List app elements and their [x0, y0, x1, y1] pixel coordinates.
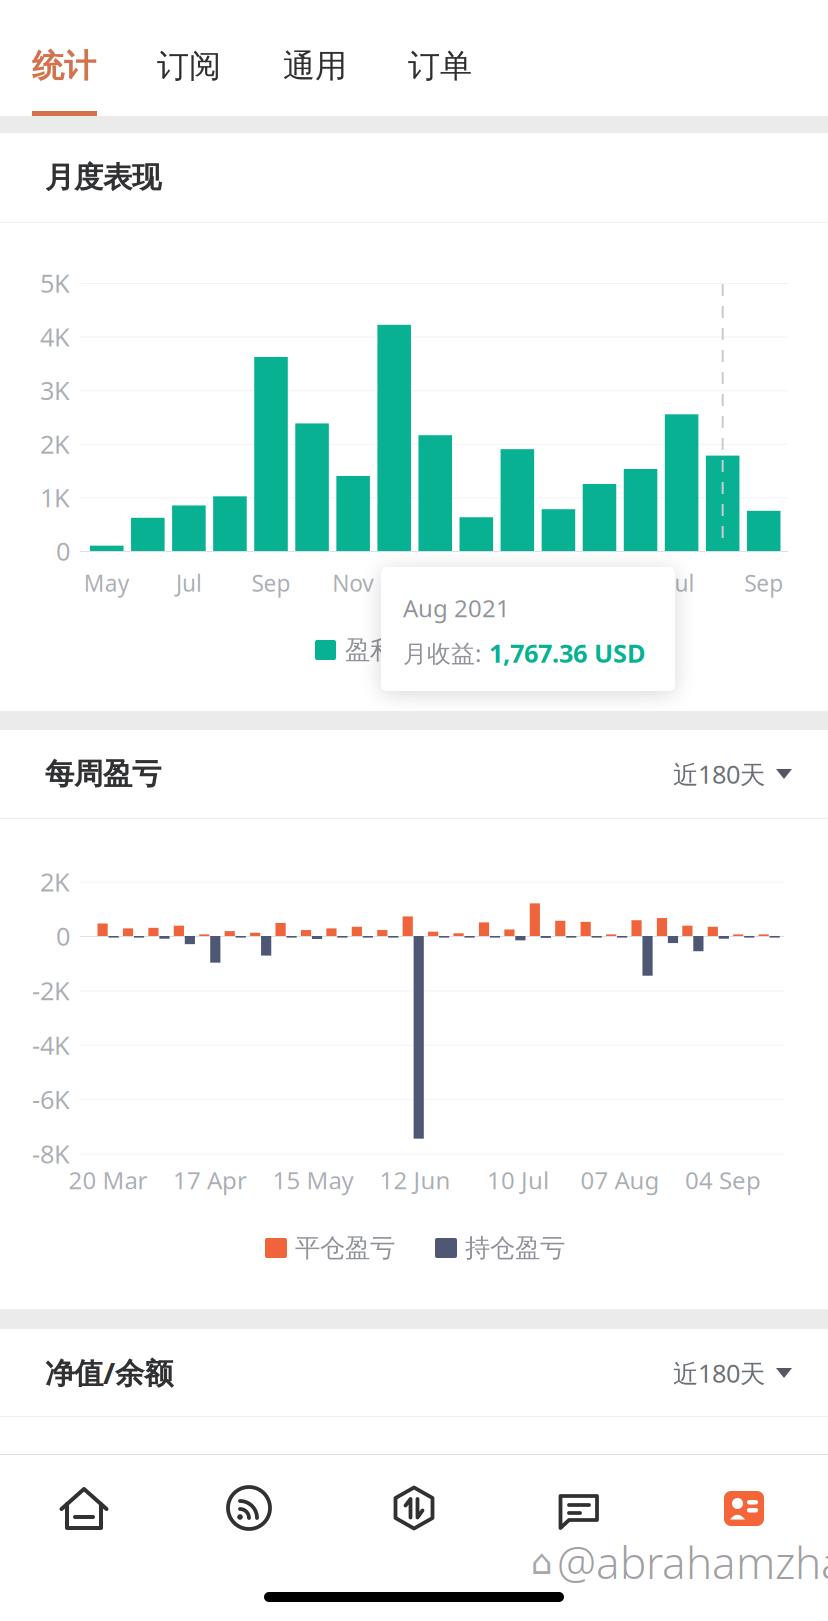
button[interactable]: Account: [661, 1455, 826, 1561]
staticText: 1K: [40, 481, 70, 514]
staticText: May: [84, 568, 130, 598]
staticText: 20 Mar: [68, 1164, 147, 1196]
staticText: Sep: [251, 568, 290, 598]
staticText: 通用: [283, 46, 347, 86]
button[interactable]: 通用: [283, 44, 403, 88]
staticText: 0: [56, 919, 70, 953]
staticText: 净值/余额: [45, 1353, 173, 1392]
staticText: -2K: [32, 974, 70, 1007]
staticText: Jul: [669, 568, 695, 598]
staticText: 04 Sep: [685, 1164, 761, 1196]
button[interactable]: Home: [1, 1455, 166, 1561]
staticText: Jul: [176, 568, 202, 598]
staticText: 订单: [408, 46, 472, 86]
staticText: @abrahamzhangy: [557, 1533, 828, 1591]
staticText: 近180天: [673, 757, 765, 791]
staticText: 每周盈亏: [45, 756, 161, 792]
staticText: 2K: [40, 865, 70, 898]
staticText: 订阅: [157, 46, 221, 86]
button[interactable]: 近180天: [612, 1329, 792, 1417]
staticText: 平仓盈亏: [295, 1232, 395, 1263]
button[interactable]: 统计: [32, 44, 152, 88]
button[interactable]: 订单: [408, 44, 528, 88]
staticText: 0: [56, 534, 70, 568]
staticText: 10 Jul: [487, 1164, 549, 1196]
staticText: 1,767.36 USD: [489, 636, 646, 670]
staticText: -8K: [32, 1137, 70, 1170]
staticText: 07 Aug: [580, 1164, 659, 1196]
staticText: 近180天: [673, 1356, 765, 1390]
button[interactable]: Messages: [496, 1455, 661, 1561]
button[interactable]: 订阅: [157, 44, 277, 88]
staticText: 月收益:: [403, 637, 481, 669]
staticText: Aug 2021: [403, 592, 510, 624]
button[interactable]: 近180天: [612, 730, 792, 818]
staticText: -4K: [32, 1028, 70, 1062]
staticText: ⌂: [531, 1542, 553, 1582]
staticText: 盈利: [345, 634, 395, 665]
button[interactable]: Signals: [166, 1455, 331, 1561]
staticText: 3K: [40, 373, 70, 407]
staticText: 17 Apr: [173, 1164, 247, 1196]
staticText: 4K: [40, 320, 70, 353]
staticText: 2K: [40, 427, 70, 461]
staticText: 月度表现: [45, 159, 161, 195]
staticText: 15 May: [272, 1164, 353, 1196]
staticText: -6K: [32, 1082, 70, 1116]
button[interactable]: Trade: [331, 1455, 496, 1561]
staticText: Nov: [332, 568, 374, 598]
staticText: 5K: [40, 266, 70, 300]
staticText: Sep: [744, 568, 783, 598]
staticText: 统计: [32, 46, 96, 86]
staticText: 12 Jun: [379, 1164, 450, 1196]
staticText: 持仓盈亏: [465, 1232, 565, 1263]
